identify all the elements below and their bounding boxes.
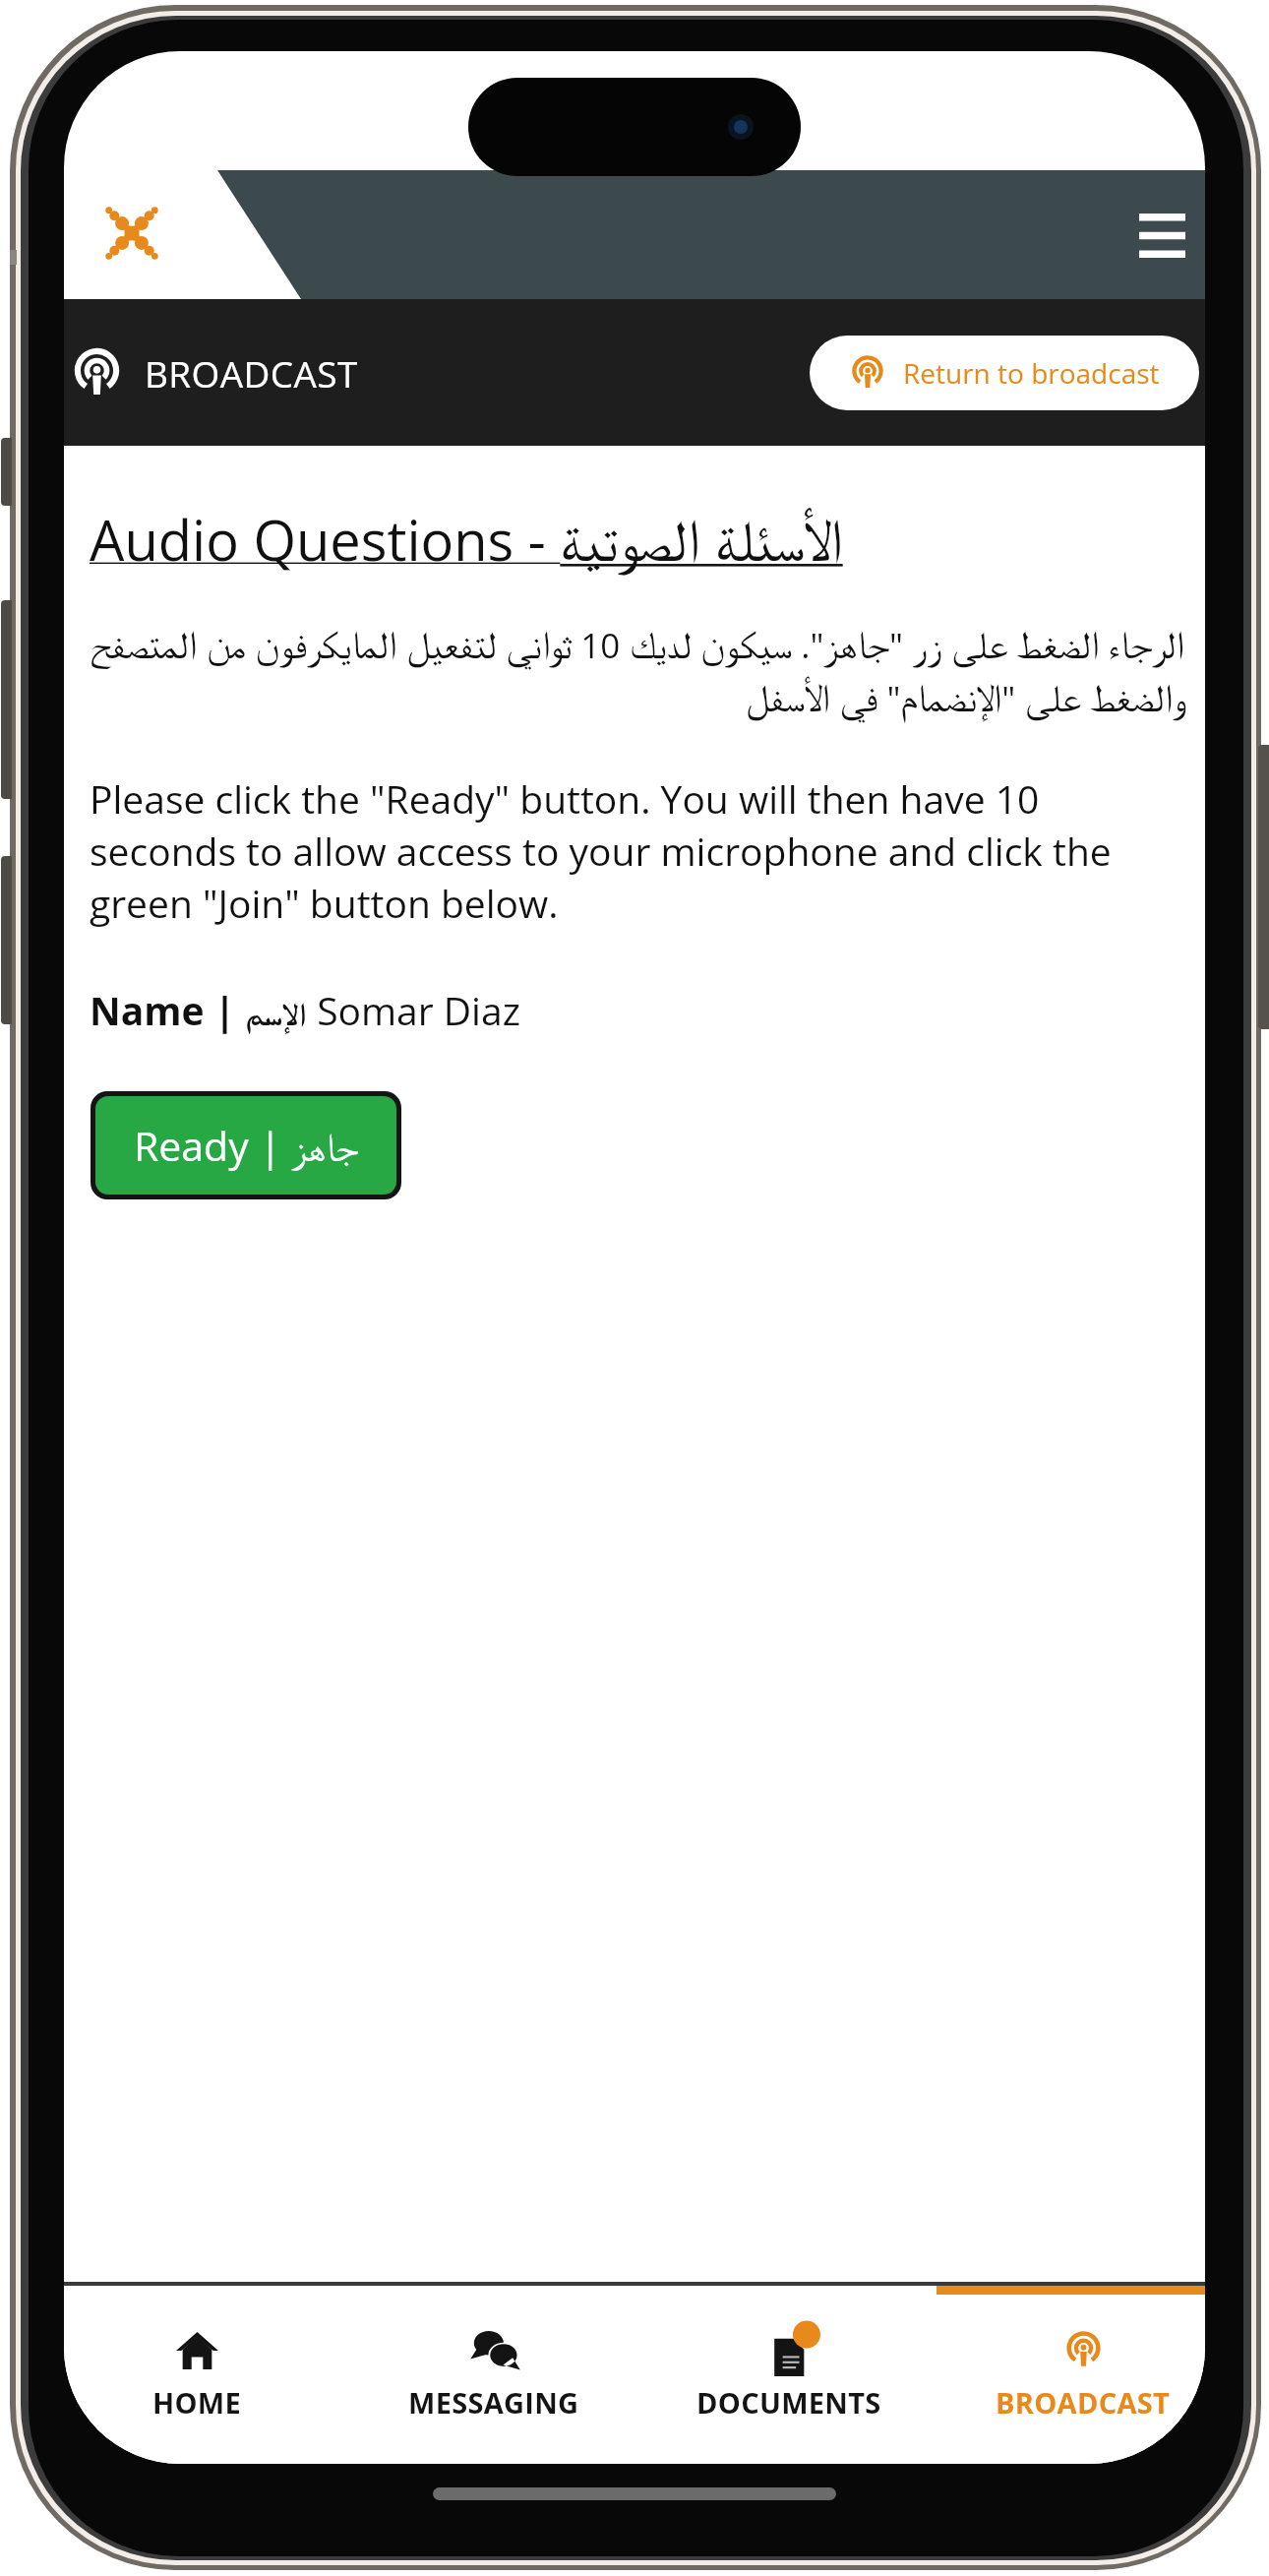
staticText: Audio Questions - الأسئلة الصوتية	[90, 502, 843, 577]
staticText: Somar Diaz	[307, 984, 520, 1036]
staticText: MESSAGING	[408, 2383, 579, 2422]
button[interactable]: HOME	[64, 2324, 339, 2442]
button[interactable]: App logo	[97, 199, 166, 268]
staticText: Ready | جاهز	[134, 1118, 358, 1173]
staticText: DOCUMENTS	[696, 2383, 881, 2422]
button[interactable]: MESSAGING	[351, 2324, 636, 2442]
staticText: Return to broadcast	[903, 354, 1160, 392]
button[interactable]: Open menu	[1119, 189, 1204, 281]
button[interactable]: Return to broadcast	[810, 336, 1199, 410]
staticText: BROADCAST	[145, 348, 358, 398]
staticText: Name | الإسم	[90, 984, 307, 1036]
staticText: الرجاء الضغط على زر "جاهز". سيكون لديك 1…	[84, 622, 1184, 721]
staticText: Please click the "Ready" button. You wil…	[90, 772, 1181, 929]
button[interactable]: Ready | جاهز	[95, 1096, 396, 1195]
staticText: HOME	[152, 2383, 242, 2422]
button[interactable]: BROADCAST	[940, 2324, 1205, 2442]
button[interactable]: DOCUMENTS	[646, 2324, 932, 2442]
staticText: BROADCAST	[996, 2383, 1171, 2422]
